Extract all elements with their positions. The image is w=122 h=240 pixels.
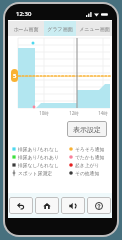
staticText: 排尿あり/もれあり (18, 154, 59, 161)
button[interactable]: ホーム画面 (8, 21, 44, 36)
button[interactable]: 表示設定 (67, 121, 107, 137)
staticText: 5 (13, 72, 17, 80)
button[interactable]: Home (35, 197, 59, 214)
staticText: 12時 (68, 110, 80, 116)
button[interactable]: Sound (61, 197, 85, 214)
staticText: 14時 (97, 110, 109, 116)
staticText: 表示設定 (73, 125, 101, 134)
button[interactable]: Back (9, 197, 33, 214)
button[interactable]: Help (87, 197, 111, 214)
button[interactable]: グラフ画面 (44, 21, 76, 36)
staticText: そろそろ通知 (75, 146, 105, 152)
staticText: 起き上がり (75, 162, 100, 168)
staticText: その他通知 (75, 170, 100, 176)
staticText: ホーム画面 (13, 26, 39, 32)
staticText: 10時 (38, 110, 50, 116)
staticText: 12:30 (16, 10, 32, 18)
staticText: グラフ画面 (47, 26, 73, 32)
staticText: 排尿なし/もれなし (18, 162, 59, 169)
staticText: 排尿あり/もれなし (18, 146, 59, 153)
staticText: でたかも通知 (75, 154, 105, 160)
staticText: メニュー画面 (79, 26, 110, 32)
button[interactable]: メニュー画面 (76, 21, 112, 36)
staticText: スポット尿測定 (18, 170, 53, 176)
